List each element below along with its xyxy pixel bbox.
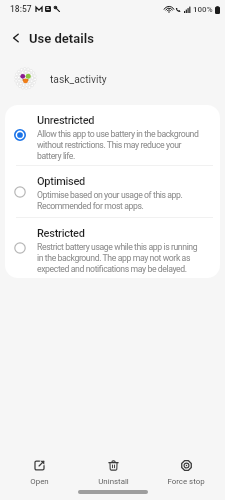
button[interactable]: Optimised <box>5 166 220 217</box>
staticText: Restricted <box>37 227 85 240</box>
staticText: Force stop <box>167 477 205 486</box>
staticText: Optimise based on your usage of this app… <box>37 190 183 211</box>
button[interactable]: Navigate up <box>5 27 27 49</box>
button[interactable]: Restricted <box>5 218 220 278</box>
button[interactable]: Force stop <box>151 455 221 486</box>
staticText: Unrestricted <box>37 114 95 127</box>
staticText: Uninstall <box>98 477 129 486</box>
staticText: Use details <box>29 31 94 46</box>
button[interactable]: Open <box>4 455 74 486</box>
staticText: Open <box>30 477 49 486</box>
staticText: 100% <box>193 5 213 14</box>
button[interactable]: Uninstall <box>78 455 148 486</box>
staticText: Allow this app to use battery in the bac… <box>37 129 199 161</box>
staticText: task_activity <box>50 73 107 85</box>
staticText: 18:57 <box>10 4 32 14</box>
staticText: Restrict battery usage while this app is… <box>37 242 198 274</box>
button[interactable]: Unrestricted <box>5 105 220 165</box>
staticText: Optimised <box>37 175 86 188</box>
